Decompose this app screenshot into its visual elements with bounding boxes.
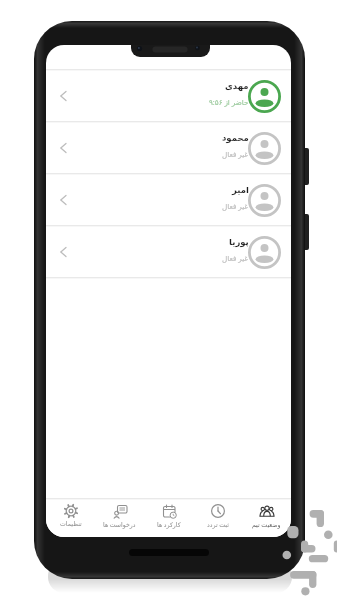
button[interactable]: وضعیت تیم [242,504,291,537]
button[interactable]: محمود [46,123,291,173]
button[interactable]: پوریا [46,227,291,277]
button[interactable]: ثبت تردد [193,504,242,537]
button[interactable]: تنظیمات [46,504,95,537]
staticText: وضعیت تیم [252,520,281,528]
staticText: تنظیمات [60,520,82,527]
staticText: درخواست ها [103,520,136,528]
button[interactable]: امیر [46,175,291,225]
staticText: پوریا [229,237,249,247]
staticText: ثبت تردد [207,520,229,528]
staticText: غیر فعال [222,253,249,263]
staticText: محمود [222,133,249,143]
button[interactable]: مهدی [46,71,291,121]
staticText: غیر فعال [222,201,249,211]
button[interactable]: کارکرد ها [144,504,193,537]
staticText: غیر فعال [222,149,249,159]
staticText: حاضر از ۹:۵۶ [209,97,249,107]
button[interactable]: درخواست ها [95,504,144,537]
staticText: مهدی [225,81,249,91]
staticText: امیر [232,185,249,195]
staticText: کارکرد ها [157,520,181,528]
